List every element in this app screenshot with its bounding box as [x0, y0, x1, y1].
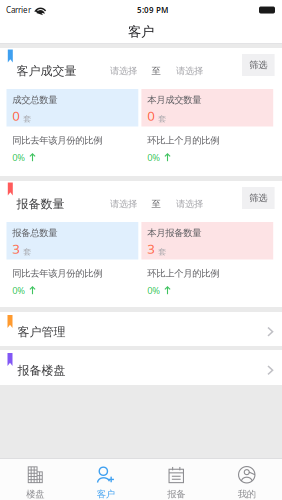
staticText: 套 — [23, 114, 31, 124]
staticText: 楼盘 — [26, 488, 44, 500]
staticText: 5:09 PM — [137, 5, 168, 15]
staticText: 客户管理 — [17, 325, 65, 339]
staticText: 客户 — [128, 24, 154, 40]
button[interactable]: 客户管理 — [0, 312, 282, 346]
staticText: 请选择 — [110, 65, 137, 77]
staticText: 本月成交数量 — [147, 94, 201, 106]
button[interactable]: 筛选 — [242, 54, 275, 76]
staticText: 0% — [147, 284, 160, 297]
staticText: 请选择 — [176, 198, 203, 210]
staticText: 0 — [12, 107, 20, 124]
button[interactable]: 请选择 — [98, 60, 148, 82]
staticText: 报备总数量 — [12, 227, 57, 239]
staticText: 套 — [23, 247, 31, 257]
staticText: 同比去年该月份的比例 — [12, 268, 102, 279]
staticText: 成交总数量 — [12, 94, 57, 106]
staticText: 请选择 — [110, 198, 137, 210]
staticText: 同比去年该月份的比例 — [12, 135, 102, 146]
staticText: Carrier — [6, 5, 31, 15]
button[interactable]: 请选择 — [163, 60, 215, 82]
staticText: 报备数量 — [16, 197, 64, 211]
staticText: 客户成交量 — [16, 64, 76, 78]
staticText: 环比上个月的比例 — [147, 135, 219, 146]
button[interactable]: 筛选 — [242, 187, 275, 209]
staticText: 客户 — [97, 488, 115, 500]
staticText: 套 — [158, 114, 166, 124]
button[interactable]: 至 — [148, 60, 163, 82]
staticText: 0% — [12, 284, 25, 297]
staticText: 报备楼盘 — [17, 363, 65, 378]
staticText: 3 — [147, 240, 155, 257]
staticText: 3 — [12, 240, 20, 257]
staticText: 我的 — [238, 488, 256, 500]
staticText: 0% — [12, 151, 25, 164]
button[interactable]: 楼盘 — [0, 459, 70, 500]
button[interactable]: 报备 — [141, 459, 211, 500]
button[interactable]: 我的 — [211, 459, 282, 500]
staticText: 至 — [151, 198, 160, 210]
button[interactable]: 报备楼盘 — [0, 350, 282, 385]
button[interactable]: 请选择 — [98, 193, 148, 215]
staticText: 环比上个月的比例 — [147, 268, 219, 279]
staticText: 0% — [147, 151, 160, 164]
staticText: 本月报备数量 — [147, 227, 201, 239]
button[interactable]: 至 — [148, 193, 163, 215]
staticText: 0 — [147, 107, 155, 124]
staticText: 套 — [158, 247, 166, 257]
staticText: 筛选 — [249, 59, 267, 71]
button[interactable]: 请选择 — [163, 193, 215, 215]
staticText: 至 — [151, 65, 160, 77]
staticText: 请选择 — [176, 65, 203, 77]
staticText: 筛选 — [249, 192, 267, 204]
staticText: 报备 — [167, 488, 185, 500]
button[interactable]: 客户 — [70, 459, 141, 500]
